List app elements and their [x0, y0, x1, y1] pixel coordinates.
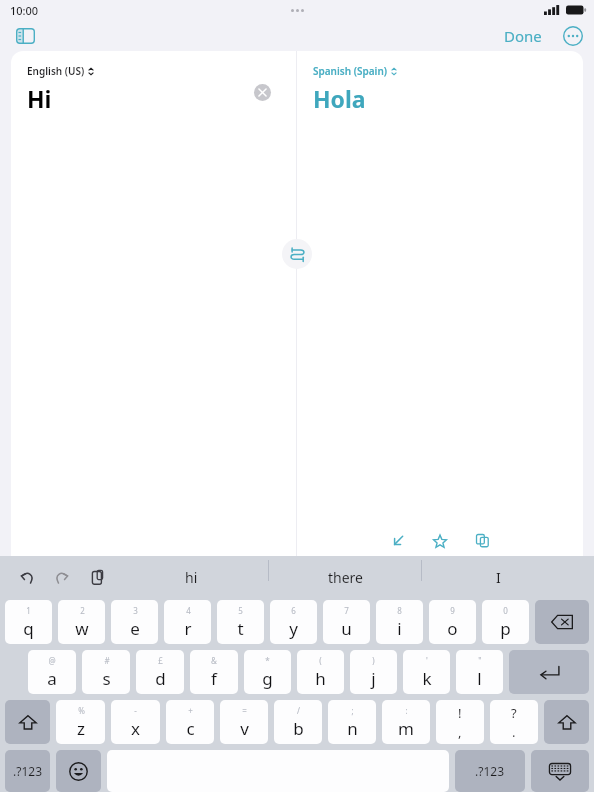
- staticText: 8: [397, 605, 402, 616]
- button[interactable]: 5: [217, 600, 264, 644]
- staticText: Hola: [313, 83, 366, 114]
- staticText: .: [512, 723, 516, 741]
- button[interactable]: @: [28, 650, 76, 694]
- button[interactable]: +: [166, 700, 214, 744]
- staticText: q: [23, 617, 34, 640]
- button[interactable]: Redo: [49, 564, 75, 590]
- button[interactable]: 1: [5, 600, 52, 644]
- button[interactable]: 6: [270, 600, 317, 644]
- staticText: ': [426, 655, 428, 666]
- staticText: b: [293, 717, 304, 740]
- staticText: v: [240, 717, 249, 740]
- staticText: @: [48, 655, 56, 666]
- button[interactable]: Sidebar: [10, 21, 40, 51]
- button[interactable]: Shift: [5, 700, 50, 744]
- staticText: r: [184, 617, 192, 640]
- button[interactable]: Undo: [14, 564, 40, 590]
- button[interactable]: Clear text: [251, 81, 273, 103]
- staticText: hi: [185, 568, 198, 587]
- staticText: ): [372, 655, 375, 666]
- button[interactable]: hi: [115, 560, 268, 594]
- staticText: =: [242, 705, 247, 716]
- button[interactable]: .?123: [455, 750, 525, 792]
- button[interactable]: English (US): [27, 64, 94, 78]
- staticText: m: [398, 717, 414, 740]
- staticText: 2: [80, 605, 85, 616]
- staticText: o: [447, 617, 458, 640]
- button[interactable]: &: [190, 650, 238, 694]
- button[interactable]: Expand: [385, 534, 411, 556]
- button[interactable]: 2: [58, 600, 105, 644]
- button[interactable]: (: [297, 650, 344, 694]
- button[interactable]: ): [350, 650, 397, 694]
- button[interactable]: #: [82, 650, 130, 694]
- staticText: I: [496, 568, 501, 587]
- button[interactable]: -: [111, 700, 160, 744]
- staticText: *: [265, 655, 270, 666]
- button[interactable]: %: [56, 700, 105, 744]
- button[interactable]: Paste: [84, 564, 110, 590]
- staticText: .?123: [475, 763, 505, 779]
- staticText: 5: [238, 605, 243, 616]
- button[interactable]: Spanish (Spain): [313, 64, 397, 78]
- staticText: y: [289, 617, 298, 640]
- staticText: s: [102, 667, 111, 690]
- button[interactable]: there: [269, 560, 421, 594]
- staticText: #: [104, 655, 110, 666]
- button[interactable]: I: [422, 560, 574, 594]
- button[interactable]: /: [274, 700, 322, 744]
- button[interactable]: Shift: [544, 700, 589, 744]
- staticText: h: [315, 667, 326, 690]
- staticText: c: [186, 717, 195, 740]
- button[interactable]: Backspace: [535, 600, 589, 644]
- staticText: 0: [503, 605, 508, 616]
- staticText: Done: [504, 26, 542, 46]
- button[interactable]: ?: [490, 700, 538, 744]
- staticText: e: [130, 617, 140, 640]
- staticText: 3: [133, 605, 138, 616]
- button[interactable]: ;: [328, 700, 376, 744]
- staticText: 10:00: [10, 3, 39, 18]
- button[interactable]: 7: [323, 600, 370, 644]
- button[interactable]: !: [436, 700, 484, 744]
- staticText: %: [78, 705, 85, 716]
- button[interactable]: £: [136, 650, 184, 694]
- staticText: :: [405, 705, 408, 716]
- button[interactable]: Return: [509, 650, 589, 694]
- button[interactable]: Swap languages: [282, 239, 312, 269]
- staticText: ;: [351, 705, 354, 716]
- button[interactable]: Done: [496, 22, 550, 50]
- button[interactable]: ": [456, 650, 503, 694]
- button[interactable]: *: [244, 650, 291, 694]
- button[interactable]: 8: [376, 600, 423, 644]
- button[interactable]: Copy: [469, 534, 495, 556]
- button[interactable]: Favorite: [427, 534, 453, 556]
- staticText: p: [500, 617, 511, 640]
- button[interactable]: ': [403, 650, 450, 694]
- button[interactable]: .?123: [5, 750, 50, 792]
- button[interactable]: :: [382, 700, 430, 744]
- staticText: +: [188, 705, 193, 716]
- button[interactable]: Emoji: [56, 750, 101, 792]
- staticText: ?: [511, 704, 517, 722]
- staticText: English (US): [27, 64, 85, 78]
- staticText: /: [297, 705, 300, 716]
- button[interactable]: Dismiss keyboard: [531, 750, 589, 792]
- staticText: Hi: [27, 83, 52, 114]
- button[interactable]: 3: [111, 600, 158, 644]
- button[interactable]: 9: [429, 600, 476, 644]
- staticText: &: [211, 655, 217, 666]
- button[interactable]: More options: [560, 23, 586, 49]
- button[interactable]: =: [220, 700, 268, 744]
- button[interactable]: 0: [482, 600, 529, 644]
- button[interactable]: 4: [164, 600, 211, 644]
- staticText: 6: [291, 605, 296, 616]
- staticText: k: [422, 667, 432, 690]
- staticText: j: [371, 667, 376, 690]
- staticText: 7: [344, 605, 349, 616]
- staticText: !: [458, 704, 462, 722]
- staticText: 1: [26, 605, 31, 616]
- staticText: d: [155, 667, 166, 690]
- staticText: 4: [186, 605, 191, 616]
